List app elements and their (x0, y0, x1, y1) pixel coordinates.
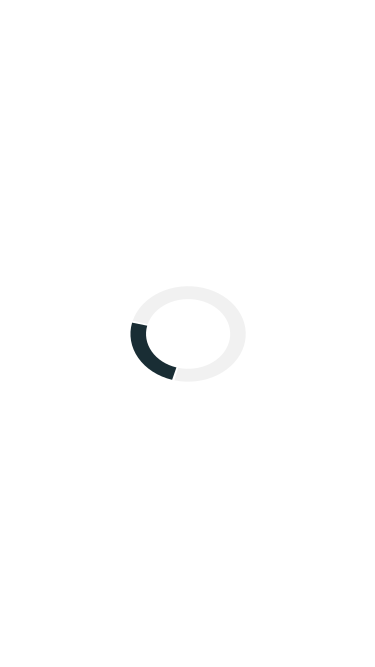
group: Loading (130, 286, 245, 381)
